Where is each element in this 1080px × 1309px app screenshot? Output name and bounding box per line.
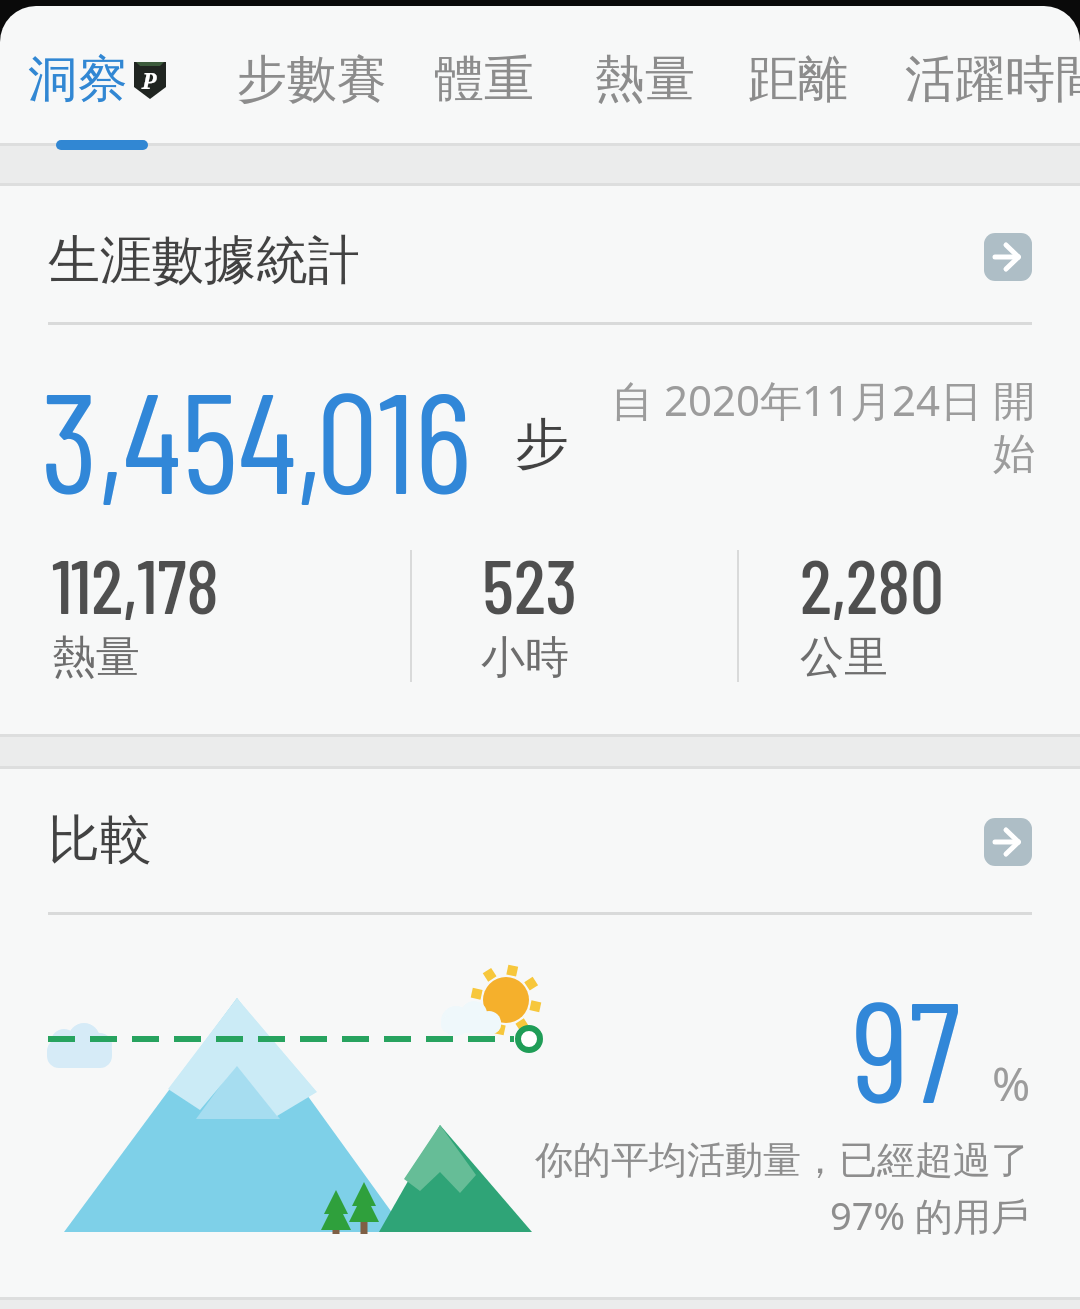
staticText: 公里: [800, 630, 888, 685]
button[interactable]: 洞察: [28, 48, 128, 111]
staticText: 小時: [481, 630, 569, 685]
staticText: 你的平均活動量，已經超過了 97% 的用戶: [429, 1136, 1029, 1241]
button[interactable]: 距離: [748, 48, 848, 111]
button[interactable]: 體重: [434, 48, 534, 111]
staticText: 112,178: [52, 538, 219, 629]
staticText: 523: [482, 538, 578, 629]
staticText: 熱量: [52, 630, 140, 685]
button[interactable]: [984, 818, 1032, 866]
staticText: 自 2020年11月24日 開 始: [560, 371, 1035, 480]
staticText: 2,280: [800, 538, 945, 629]
button[interactable]: 活躍時間: [905, 48, 1080, 111]
staticText: P: [142, 65, 157, 95]
staticText: 生涯數據統計: [48, 228, 360, 294]
button[interactable]: 熱量: [595, 48, 695, 111]
staticText: 3,454,016: [41, 354, 472, 522]
staticText: 97: [852, 962, 961, 1131]
staticText: 步: [515, 410, 569, 478]
button[interactable]: 步數賽: [237, 48, 387, 111]
staticText: 比較: [48, 807, 152, 873]
button[interactable]: [984, 233, 1032, 281]
staticText: %: [992, 1052, 1031, 1115]
